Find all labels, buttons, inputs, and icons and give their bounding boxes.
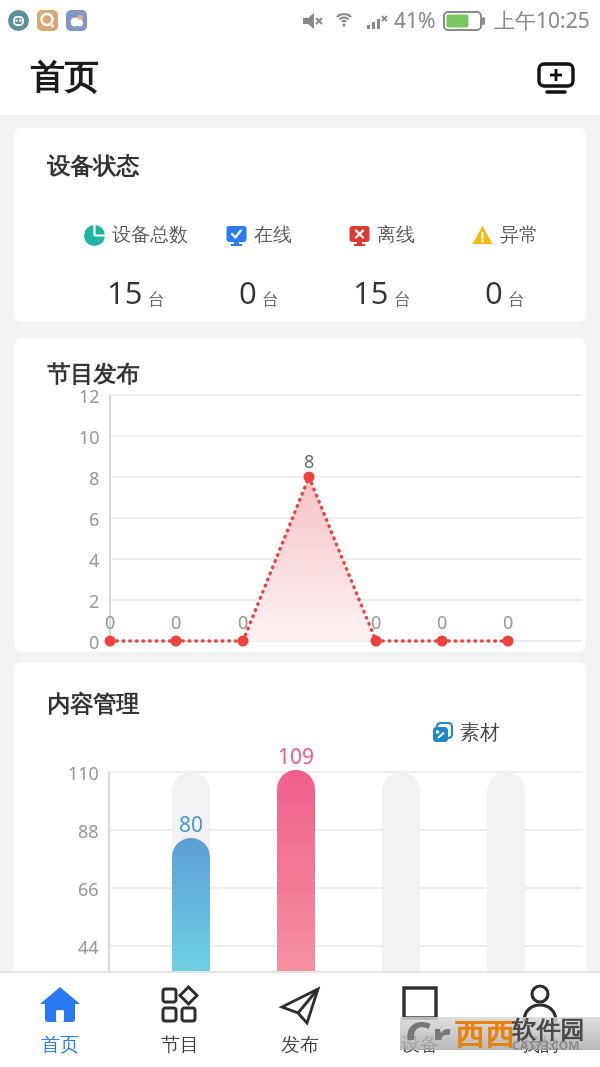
- staticText: 8: [304, 449, 315, 474]
- staticText: 2: [89, 589, 100, 614]
- staticText: 10: [79, 425, 100, 450]
- staticText: 0: [89, 630, 100, 652]
- staticText: 在线: [254, 223, 292, 247]
- staticText: 台: [394, 289, 411, 310]
- button[interactable]: 离线: [320, 223, 443, 313]
- staticText: 0: [239, 271, 257, 313]
- staticText: 66: [78, 877, 99, 902]
- staticText: 首页: [41, 1033, 79, 1057]
- button[interactable]: 素材: [433, 720, 500, 745]
- staticText: 0: [238, 610, 249, 635]
- staticText: 设备状态: [47, 152, 139, 181]
- staticText: 15: [107, 271, 143, 313]
- staticText: 素材: [460, 720, 500, 745]
- staticText: 0: [105, 610, 116, 635]
- staticText: 节目: [161, 1033, 199, 1057]
- staticText: 0: [437, 610, 448, 635]
- staticText: 4: [89, 548, 100, 573]
- staticText: 首页: [30, 56, 98, 99]
- button[interactable]: 首页: [0, 971, 120, 1067]
- staticText: 110: [68, 761, 99, 786]
- staticText: 我的: [521, 1033, 559, 1057]
- button[interactable]: 在线: [197, 223, 320, 313]
- staticText: 0: [171, 610, 182, 635]
- staticText: 41%: [394, 6, 436, 35]
- staticText: 节目发布: [47, 360, 139, 389]
- staticText: 异常: [500, 223, 538, 247]
- staticText: 109: [278, 742, 315, 771]
- staticText: 0: [503, 610, 514, 635]
- staticText: 0: [371, 610, 382, 635]
- button[interactable]: 异常: [443, 223, 566, 313]
- staticText: 台: [148, 289, 165, 310]
- staticText: 上午10:25: [494, 6, 590, 35]
- staticText: 44: [78, 935, 99, 960]
- staticText: Cr: [405, 1007, 451, 1040]
- staticText: 台: [262, 289, 279, 310]
- button[interactable]: 设备总数: [74, 223, 197, 313]
- staticText: 6: [89, 507, 100, 532]
- staticText: 发布: [281, 1033, 319, 1057]
- button[interactable]: [534, 56, 578, 100]
- staticText: CA173.COM: [512, 1037, 580, 1053]
- staticText: 80: [179, 810, 204, 839]
- staticText: 台: [508, 289, 525, 310]
- staticText: 0: [485, 271, 503, 313]
- staticText: 设备: [401, 1033, 439, 1057]
- staticText: 离线: [377, 223, 415, 247]
- staticText: 8: [89, 466, 100, 491]
- button[interactable]: 设备: [360, 971, 480, 1067]
- staticText: 设备总数: [112, 223, 188, 247]
- staticText: 内容管理: [47, 690, 139, 719]
- staticText: 12: [79, 384, 100, 409]
- staticText: 88: [78, 819, 99, 844]
- button[interactable]: 发布: [240, 971, 360, 1067]
- staticText: 软件园: [512, 1015, 584, 1045]
- staticText: 西西: [455, 1016, 515, 1049]
- button[interactable]: 我的: [480, 971, 600, 1067]
- staticText: 15: [353, 271, 389, 313]
- button[interactable]: 节目: [120, 971, 240, 1067]
